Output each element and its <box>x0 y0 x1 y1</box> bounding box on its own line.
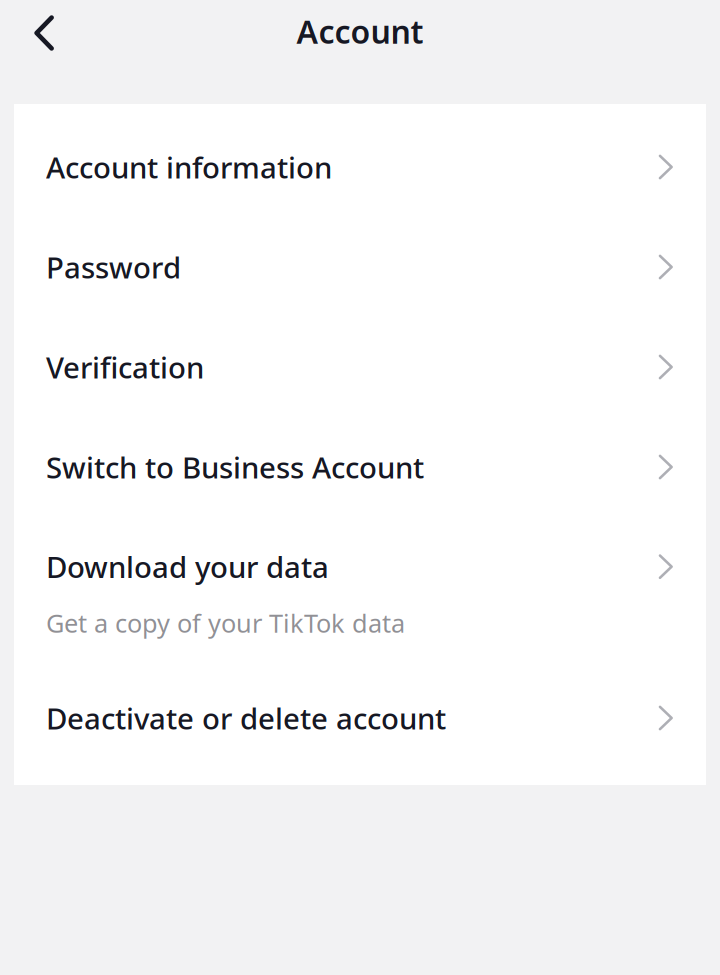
button[interactable]: Download your data <box>14 517 706 670</box>
button[interactable]: Back <box>11 0 77 66</box>
staticText: Account <box>296 10 423 52</box>
button[interactable]: Deactivate or delete account <box>14 670 706 766</box>
button[interactable]: Password <box>14 217 706 317</box>
button[interactable]: Switch to Business Account <box>14 417 706 517</box>
staticText: Get a copy of your TikTok data <box>46 606 405 640</box>
staticText: Switch to Business Account <box>46 447 424 486</box>
staticText: Password <box>46 247 181 286</box>
staticText: Verification <box>46 347 204 386</box>
staticText: Account information <box>46 147 332 186</box>
button[interactable]: Verification <box>14 317 706 417</box>
staticText: Download your data <box>46 547 329 586</box>
button[interactable]: Account information <box>14 117 706 217</box>
staticText: Deactivate or delete account <box>46 698 446 737</box>
